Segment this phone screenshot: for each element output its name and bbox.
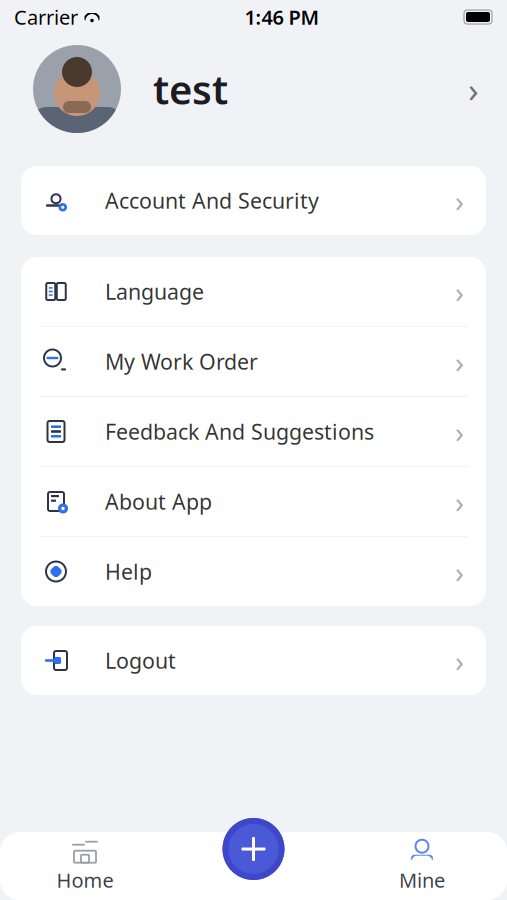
button[interactable]: Language	[21, 257, 486, 327]
button[interactable]: Home	[0, 832, 170, 900]
button[interactable]: Mine	[337, 832, 507, 900]
button[interactable]: My Work Order	[21, 327, 486, 397]
staticText: Carrier	[14, 4, 78, 30]
button[interactable]: Add	[222, 818, 284, 880]
staticText: Logout	[105, 646, 176, 675]
staticText: About App	[105, 487, 212, 516]
button[interactable]: Logout	[21, 626, 486, 695]
staticText: Help	[105, 557, 152, 586]
staticText: test	[153, 62, 228, 115]
staticText: ›	[455, 552, 464, 591]
staticText: 1:46 PM	[244, 4, 319, 30]
staticText: Home	[56, 867, 113, 893]
staticText: ›	[455, 342, 464, 381]
staticText: Language	[105, 277, 204, 306]
staticText: ›	[468, 66, 479, 112]
button[interactable]: Feedback And Suggestions	[21, 397, 486, 467]
button[interactable]: test	[0, 34, 507, 144]
staticText: Feedback And Suggestions	[105, 417, 374, 446]
staticText: ›	[455, 482, 464, 521]
staticText: ›	[455, 641, 464, 680]
button[interactable]: Help	[21, 537, 486, 606]
staticText: Mine	[399, 867, 445, 893]
button[interactable]: Account And Security	[21, 166, 486, 235]
staticText: ›	[455, 181, 464, 220]
staticText: ›	[455, 412, 464, 451]
staticText: ›	[455, 272, 464, 311]
staticText: Account And Security	[105, 186, 319, 215]
staticText: My Work Order	[105, 347, 258, 376]
button[interactable]: About App	[21, 467, 486, 537]
